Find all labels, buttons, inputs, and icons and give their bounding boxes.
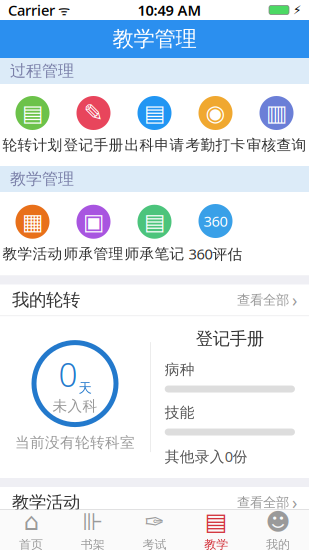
staticText: 其他录入0份 — [165, 446, 248, 466]
button[interactable]: 查看全部 — [237, 284, 297, 315]
staticText: ▤ — [22, 100, 43, 126]
staticText: 教学活动 — [12, 492, 80, 513]
staticText: 审核查询 — [246, 136, 306, 154]
button[interactable]: ☻ — [247, 503, 309, 550]
staticText: 查看全部 — [237, 494, 289, 511]
staticText: 病种 — [165, 360, 195, 378]
button[interactable]: ▣ — [63, 199, 124, 269]
staticText: 查看全部 — [237, 292, 289, 308]
staticText: 过程管理 — [10, 61, 74, 81]
staticText: 0 — [58, 352, 77, 396]
staticText: 轮转计划 — [2, 136, 62, 154]
staticText: 考试 — [142, 537, 166, 550]
staticText: ▤ — [144, 209, 165, 235]
button[interactable]: ▤ — [124, 90, 185, 160]
staticText: 360评估 — [188, 244, 242, 263]
staticText: ⌂ — [23, 508, 38, 535]
button[interactable]: ▦ — [2, 199, 63, 269]
staticText: 10:49 AM — [137, 0, 201, 20]
staticText: 登记手册 — [196, 328, 264, 349]
button[interactable]: ✑ — [124, 503, 185, 550]
button[interactable]: 查看全部 — [237, 487, 297, 518]
staticText: 360 — [203, 211, 227, 231]
staticText: ▣ — [83, 209, 104, 235]
staticText: 师承笔记 — [124, 245, 184, 263]
staticText: 未入科 — [52, 397, 97, 415]
button[interactable]: ▤ — [124, 199, 185, 269]
staticText: 首页 — [19, 537, 43, 550]
staticText: 我的 — [266, 537, 290, 550]
button[interactable]: ⌂ — [0, 503, 62, 550]
staticText: 出科申请 — [124, 136, 184, 154]
staticText: Carrier — [8, 0, 55, 20]
staticText: 教学 — [204, 537, 228, 550]
staticText: 登记手册 — [63, 136, 123, 154]
staticText: ▥ — [266, 100, 287, 126]
staticText: 我的轮转 — [12, 289, 80, 311]
staticText: ☻ — [266, 508, 291, 535]
staticText: ᯤ — [55, 1, 70, 19]
staticText: 考勤打卡 — [185, 136, 245, 154]
staticText: 教学活动 — [2, 245, 62, 263]
staticText: › — [292, 491, 297, 514]
staticText: ⊪ — [82, 508, 103, 535]
staticText: 天 — [78, 380, 91, 396]
staticText: ◉ — [205, 100, 225, 126]
staticText: ▤ — [205, 508, 228, 535]
staticText: ▤ — [144, 100, 165, 126]
staticText: 教学管理 — [10, 169, 74, 189]
button[interactable]: ✎ — [63, 90, 124, 160]
staticText: 师承管理 — [63, 245, 123, 263]
button[interactable]: ⊪ — [62, 503, 124, 550]
staticText: ▦ — [22, 209, 43, 235]
button[interactable]: ◉ — [185, 90, 246, 160]
button[interactable]: ▥ — [246, 90, 307, 160]
staticText: ⚡︎ — [289, 3, 301, 17]
button[interactable]: 360 — [185, 198, 246, 269]
staticText: ✎ — [83, 99, 103, 127]
staticText: › — [292, 288, 297, 311]
staticText: 教学管理 — [112, 26, 196, 52]
button[interactable]: ▤ — [185, 503, 247, 550]
staticText: 技能 — [165, 403, 195, 421]
button[interactable]: ▤ — [2, 90, 63, 160]
staticText: ✑ — [144, 508, 164, 535]
staticText: 当前没有轮转科室 — [15, 434, 135, 452]
staticText: 书架 — [81, 537, 105, 550]
